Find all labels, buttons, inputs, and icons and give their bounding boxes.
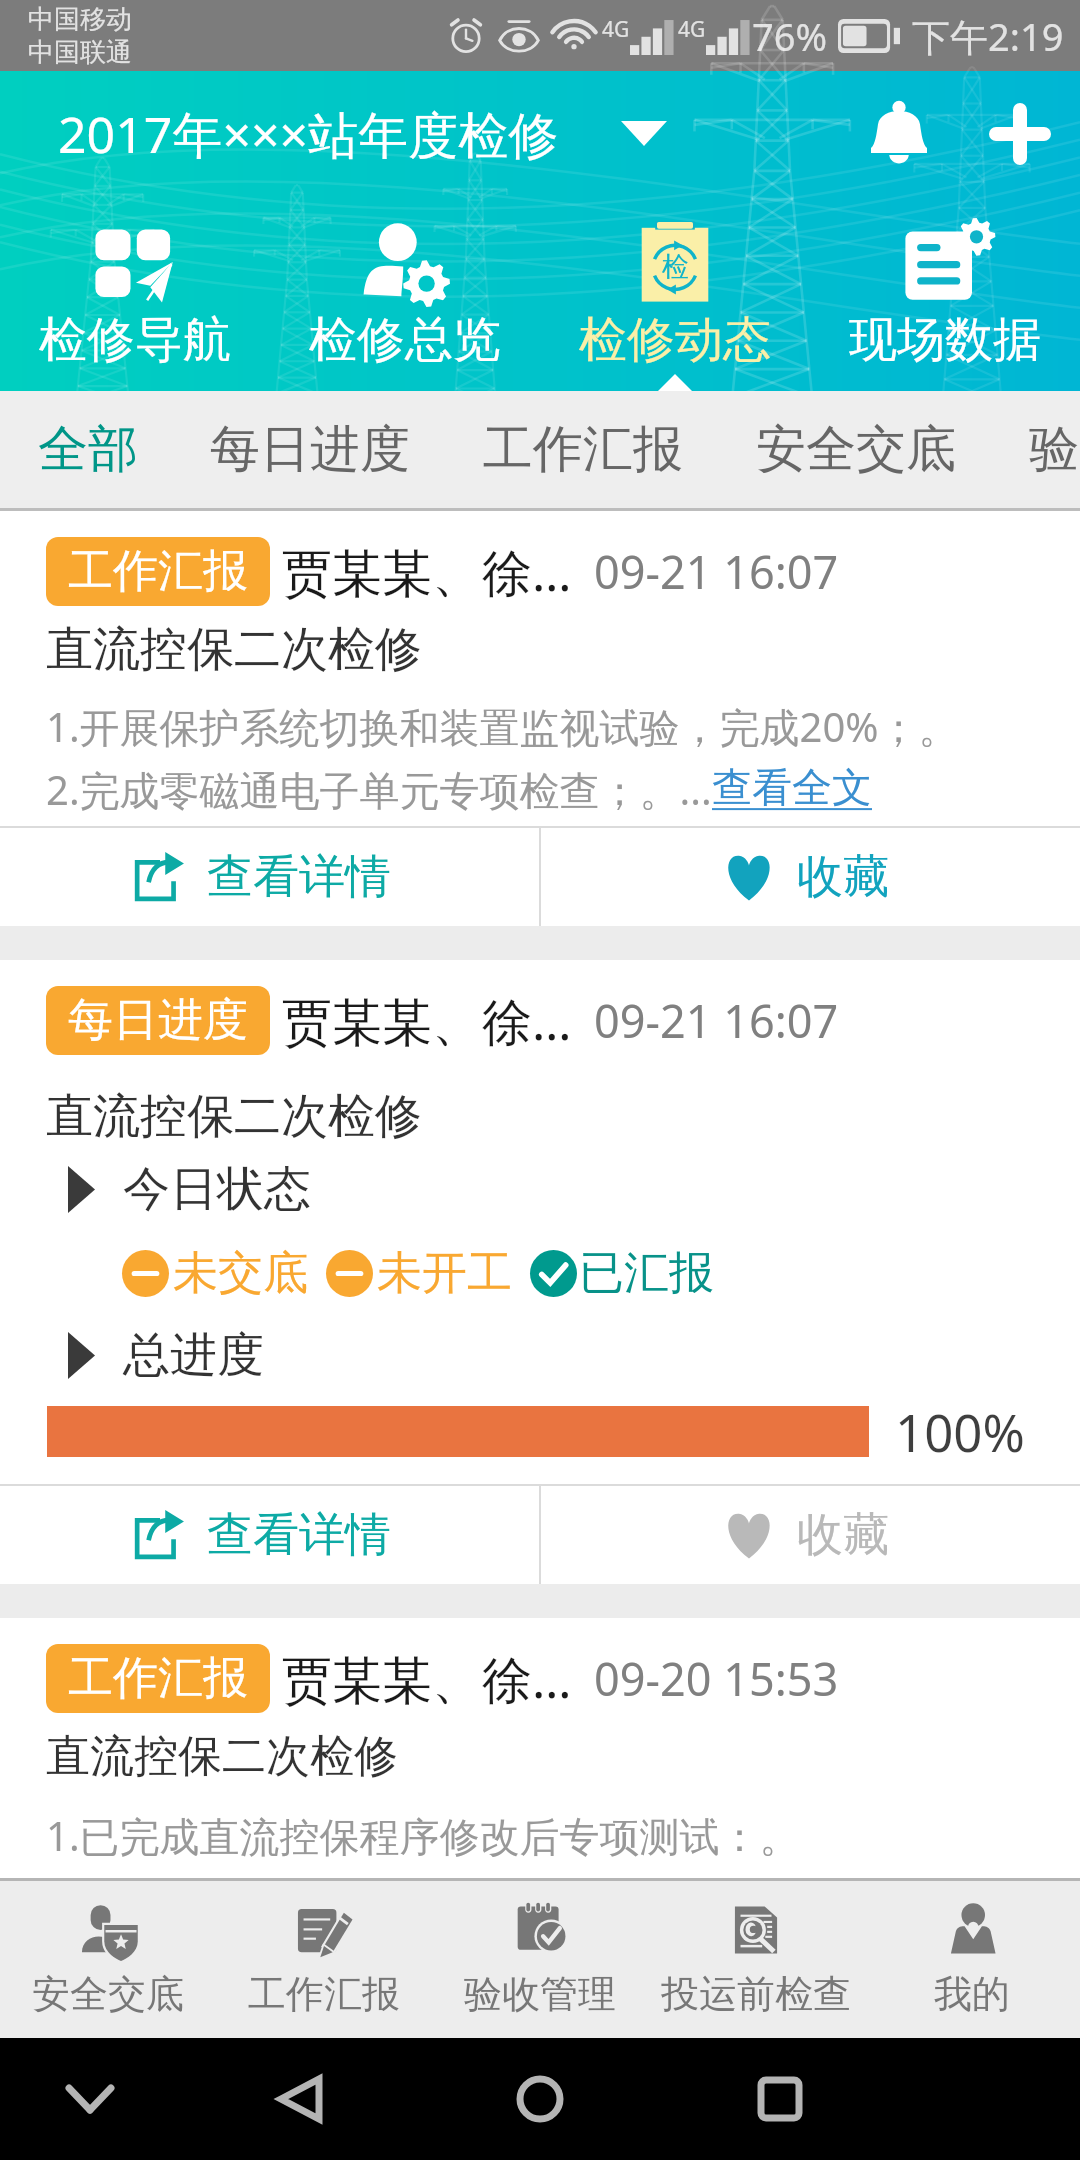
staticText: 未开工 <box>377 1245 512 1302</box>
button[interactable]: 我的 <box>864 1881 1080 2038</box>
button[interactable]: 现场数据 <box>810 196 1080 391</box>
staticText: 未交底 <box>173 1245 308 1302</box>
staticText: 投运前检查 <box>661 1970 851 2018</box>
button[interactable]: 工作汇报 <box>216 1881 432 2038</box>
button[interactable]: Add <box>990 104 1050 164</box>
staticText: 收藏 <box>797 848 889 906</box>
staticText: 验收管理 <box>464 1970 616 2018</box>
staticText: 总进度 <box>123 1326 264 1385</box>
staticText: 76% <box>752 10 828 62</box>
staticText: 工作汇报 <box>68 1650 248 1707</box>
button[interactable]: 检修总览 <box>270 196 540 391</box>
button[interactable]: 投运前检查 <box>648 1881 864 2038</box>
staticText: 我的 <box>934 1970 1010 2018</box>
staticText: 4G <box>602 15 630 44</box>
staticText: 1.开展保护系统切换和装置监视试验，完成20%；。 <box>46 699 959 754</box>
button[interactable]: 全部 <box>38 391 138 508</box>
staticText: 100% <box>895 1397 1025 1466</box>
button[interactable]: 验收管理 <box>1029 391 1080 508</box>
staticText: 查看详情 <box>207 848 391 906</box>
staticText: 贾某某、徐… <box>282 987 572 1055</box>
staticText: 每日进度 <box>68 992 248 1049</box>
staticText: 1.已完成直流控保程序修改后专项测试：。 <box>46 1808 800 1863</box>
button[interactable]: 工作汇报 <box>483 391 683 508</box>
button[interactable]: 检修导航 <box>0 196 270 391</box>
staticText: 直流控保二次检修 <box>46 620 422 679</box>
staticText: 收藏 <box>797 1506 889 1564</box>
staticText: 工作汇报 <box>68 543 248 600</box>
staticText: 工作汇报 <box>248 1970 400 2018</box>
staticText: 查看详情 <box>207 1506 391 1564</box>
staticText: 09-20 15:53 <box>594 1648 839 1709</box>
staticText: 4G <box>678 15 706 44</box>
button[interactable]: 检 <box>540 196 810 391</box>
button[interactable]: 验收管理 <box>432 1881 648 2038</box>
button[interactable]: Back <box>270 2069 330 2129</box>
staticText: 直流控保二次检修 <box>46 1729 398 1784</box>
staticText: 中国移动 <box>28 3 132 36</box>
button[interactable]: Select project <box>621 121 667 146</box>
button[interactable]: 工作汇报 <box>0 1618 1080 1863</box>
staticText: 工作汇报 <box>483 418 683 481</box>
staticText: 验收管理 <box>1029 418 1080 481</box>
staticText: 检修导航 <box>39 310 231 370</box>
button[interactable]: 工作汇报 <box>0 511 1080 926</box>
button[interactable]: 每日进度 <box>210 391 410 508</box>
button[interactable]: Notifications <box>864 99 934 169</box>
staticText: 2.完成零磁通电子单元专项检查；。... <box>46 762 712 817</box>
staticText: 检修动态 <box>579 310 771 370</box>
button[interactable]: 收藏 <box>541 828 1080 926</box>
button[interactable]: 查看详情 <box>0 828 539 926</box>
staticText: 直流控保二次检修 <box>46 1087 422 1146</box>
staticText: 中国联通 <box>28 36 132 69</box>
staticText: 查看全文 <box>712 762 872 812</box>
button[interactable]: Recent apps <box>750 2069 810 2129</box>
staticText: 安全交底 <box>756 418 956 481</box>
button[interactable]: 每日进度 <box>0 960 1080 1584</box>
staticText: 已汇报 <box>579 1245 714 1302</box>
staticText: 全部 <box>38 418 138 481</box>
staticText: 09-21 16:07 <box>594 990 839 1051</box>
button[interactable]: 安全交底 <box>0 1881 216 2038</box>
staticText: 安全交底 <box>32 1970 184 2018</box>
staticText: 检修总览 <box>309 310 501 370</box>
staticText: 每日进度 <box>210 418 410 481</box>
staticText: 现场数据 <box>849 310 1041 370</box>
button[interactable]: 安全交底 <box>756 391 956 508</box>
button[interactable]: Home <box>510 2069 570 2129</box>
staticText: 下午2:19 <box>912 10 1064 62</box>
staticText: 2017年×××站年度检修 <box>58 100 559 168</box>
button[interactable]: Hide keyboard <box>60 2069 120 2129</box>
staticText: 今日状态 <box>123 1160 311 1219</box>
staticText: 贾某某、徐… <box>282 538 572 606</box>
button[interactable]: 查看详情 <box>0 1486 539 1584</box>
button[interactable]: 收藏 <box>541 1486 1080 1584</box>
staticText: 检 <box>662 250 689 284</box>
staticText: 09-21 16:07 <box>594 541 839 602</box>
staticText: 贾某某、徐… <box>282 1645 572 1713</box>
